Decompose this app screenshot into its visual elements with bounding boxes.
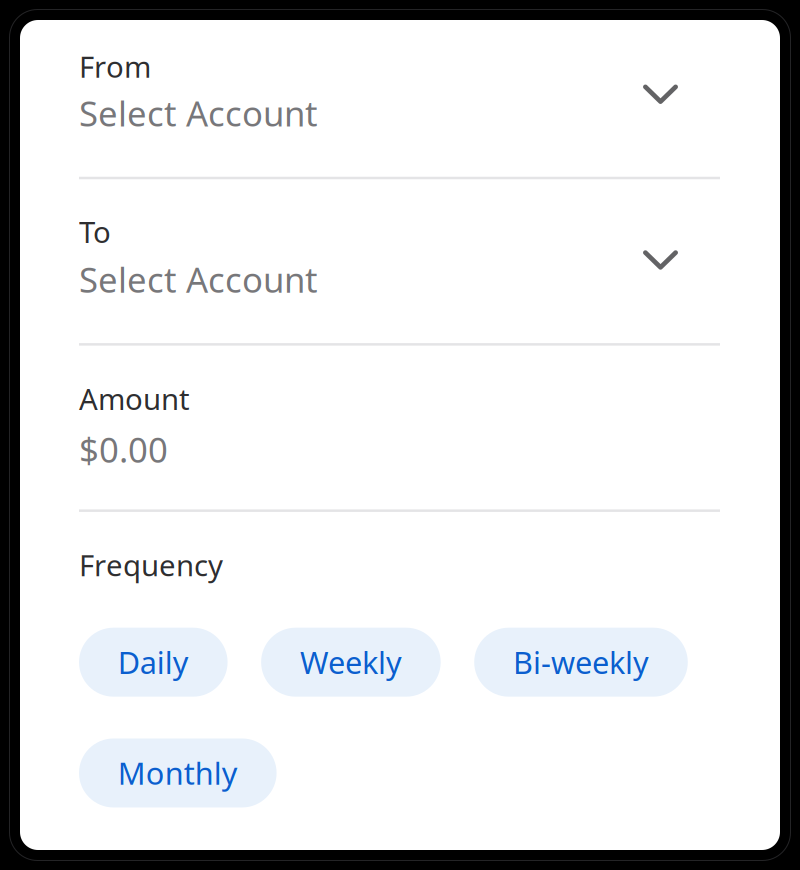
button[interactable]: Monthly: [79, 738, 277, 807]
staticText: Frequency: [79, 545, 223, 584]
staticText: Bi-weekly: [513, 642, 649, 682]
staticText: Weekly: [300, 642, 402, 682]
staticText: Amount: [79, 379, 190, 418]
staticText: Monthly: [118, 753, 238, 793]
button[interactable]: Daily: [79, 628, 228, 697]
staticText: From: [79, 47, 151, 86]
button[interactable]: From: [79, 47, 720, 136]
staticText: Daily: [118, 642, 189, 682]
staticText: $0.00: [79, 426, 168, 472]
button[interactable]: Amount: [79, 379, 720, 472]
button[interactable]: Bi-weekly: [474, 628, 688, 697]
staticText: Select Account: [79, 256, 318, 302]
staticText: To: [79, 212, 111, 251]
staticText: Select Account: [79, 90, 318, 136]
button[interactable]: Weekly: [261, 628, 441, 697]
button[interactable]: To: [79, 212, 720, 302]
